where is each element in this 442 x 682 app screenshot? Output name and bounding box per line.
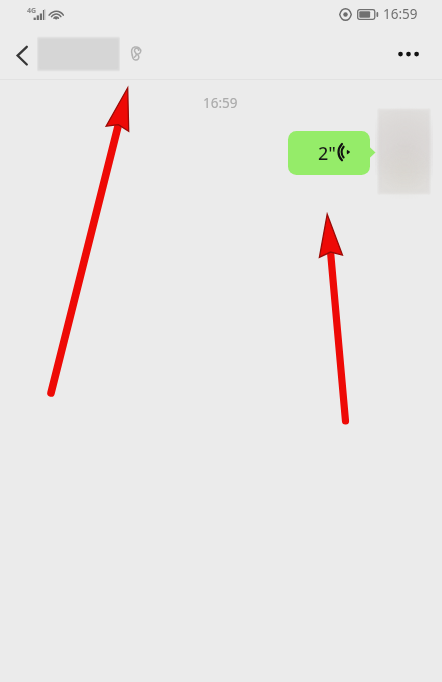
button[interactable]: More options bbox=[390, 30, 438, 78]
staticText: 16:59 bbox=[203, 94, 238, 112]
button[interactable]: Back bbox=[0, 30, 40, 78]
staticText: 4G bbox=[27, 6, 37, 16]
staticText: 2" bbox=[318, 141, 337, 166]
button[interactable]: Play voice message, 2 seconds bbox=[288, 131, 375, 175]
staticText: 16:59 bbox=[383, 5, 418, 23]
button[interactable]: Avatar bbox=[375, 104, 433, 199]
